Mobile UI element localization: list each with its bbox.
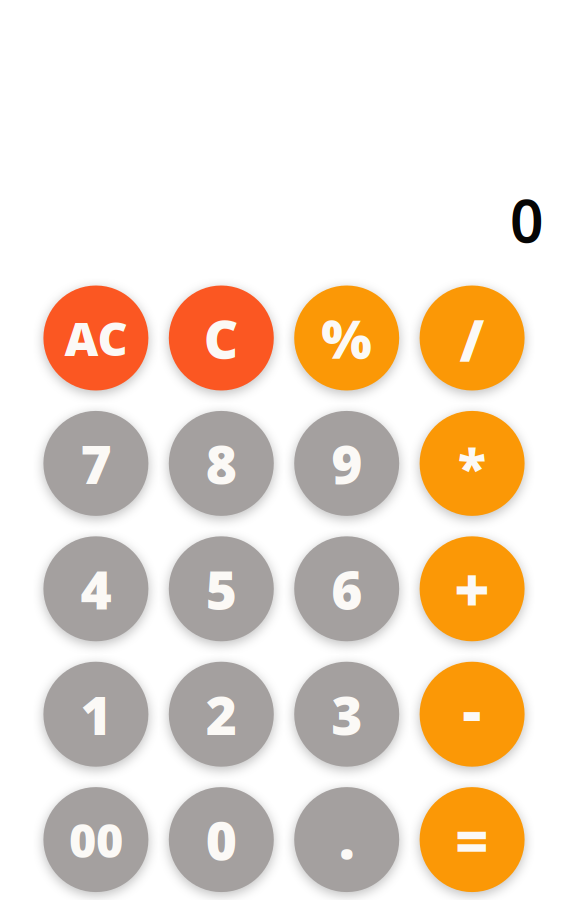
staticText: 2 [206,679,237,750]
staticText: 6 [331,553,362,624]
staticText: 7 [80,428,111,499]
button[interactable]: 3 [294,662,399,767]
staticText: 5 [206,553,237,624]
button[interactable]: / [420,285,525,390]
staticText: 00 [69,809,123,871]
button[interactable]: 00 [43,787,148,892]
staticText: + [454,548,490,629]
button[interactable]: * [420,411,525,516]
button[interactable]: + [420,536,525,641]
staticText: * [458,432,486,501]
staticText: 0 [510,181,544,259]
button[interactable]: . [294,787,399,892]
staticText: . [339,800,355,875]
staticText: C [204,303,239,373]
button[interactable]: 5 [169,536,274,641]
staticText: AC [64,307,127,369]
button[interactable]: % [294,285,399,390]
button[interactable]: 0 [169,787,274,892]
button[interactable]: C [169,285,274,390]
staticText: 0 [206,804,237,875]
staticText: 4 [80,553,111,624]
button[interactable]: 7 [43,411,148,516]
button[interactable]: 2 [169,662,274,767]
staticText: 8 [206,428,237,499]
staticText: = [455,801,489,878]
button[interactable]: AC [43,285,148,390]
staticText: 3 [331,679,362,750]
button[interactable]: 8 [169,411,274,516]
button[interactable]: 6 [294,536,399,641]
staticText: 1 [80,679,111,750]
button[interactable]: 4 [43,536,148,641]
button[interactable]: 1 [43,662,148,767]
button[interactable]: - [420,662,525,767]
button[interactable]: 9 [294,411,399,516]
staticText: % [321,303,372,373]
button[interactable]: = [420,787,525,892]
staticText: / [460,302,485,376]
staticText: - [463,670,482,748]
staticText: 9 [331,428,362,499]
